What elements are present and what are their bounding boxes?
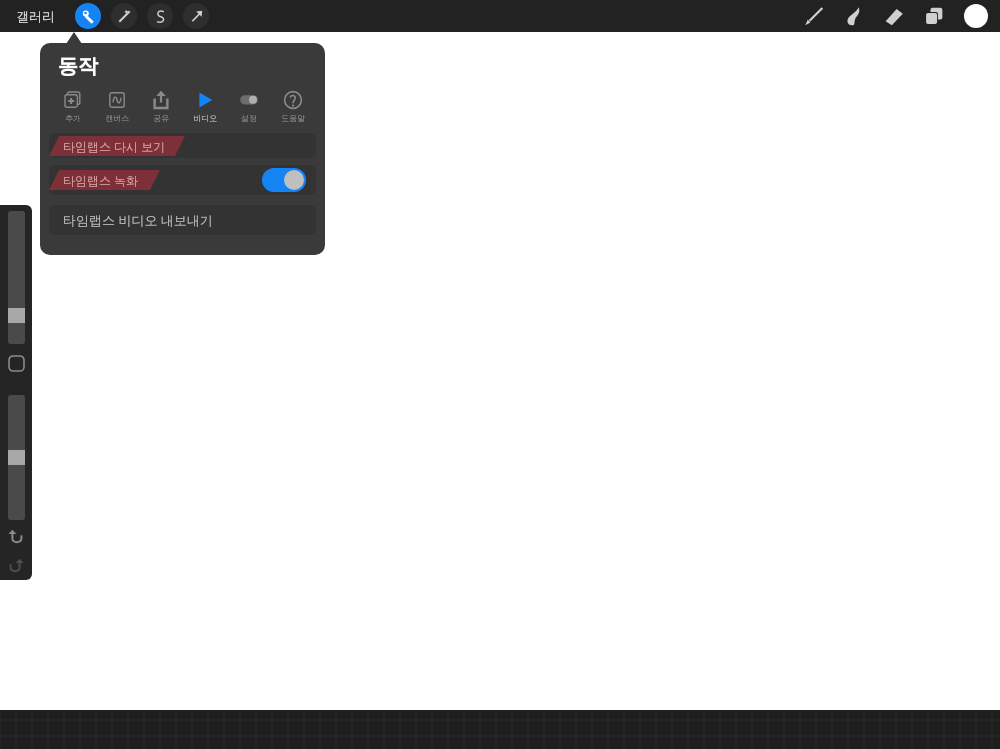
staticText: 캔버스 — [105, 113, 129, 123]
button[interactable]: Layers — [914, 0, 954, 32]
staticText: 갤러리 — [16, 8, 55, 24]
staticText: 공유 — [153, 113, 169, 123]
staticText: 비디오 — [193, 113, 217, 123]
button[interactable]: Color — [954, 0, 998, 32]
button[interactable]: 타임랩스 비디오 내보내기 — [49, 205, 316, 235]
staticText: 도움말 — [281, 113, 305, 123]
staticText: 설정 — [241, 113, 257, 123]
button[interactable]: 공유 — [139, 88, 183, 125]
button[interactable]: Erase — [874, 0, 914, 32]
button[interactable]: Paint — [794, 0, 834, 32]
button[interactable]: Selection — [147, 3, 173, 29]
button[interactable]: 설정 — [227, 88, 271, 125]
staticText: 타임랩스 다시 보기 — [63, 138, 166, 154]
button[interactable]: 타임랩스 다시 보기 — [49, 133, 316, 158]
button[interactable]: Transform — [183, 3, 209, 29]
staticText: 동작 — [58, 54, 98, 79]
button[interactable]: 추가 — [50, 88, 95, 125]
button[interactable]: 도움말 — [271, 88, 315, 125]
button[interactable]: Undo — [7, 528, 25, 546]
button[interactable]: Adjustments — [111, 3, 137, 29]
button[interactable]: 비디오 — [183, 88, 227, 125]
staticText: 추가 — [65, 113, 81, 123]
button[interactable]: Opacity — [8, 395, 25, 520]
button[interactable]: 캔버스 — [95, 88, 139, 125]
button[interactable]: 갤러리 — [10, 4, 61, 28]
staticText: 타임랩스 비디오 내보내기 — [63, 211, 213, 229]
button[interactable]: Actions — [75, 3, 101, 29]
button[interactable]: 타임랩스 녹화 — [49, 165, 316, 195]
button[interactable]: Modify — [8, 355, 25, 372]
staticText: 타임랩스 녹화 — [63, 172, 139, 188]
button[interactable]: Brush size — [8, 211, 25, 344]
button[interactable]: Smudge — [834, 0, 874, 32]
button[interactable]: Redo — [7, 557, 25, 575]
